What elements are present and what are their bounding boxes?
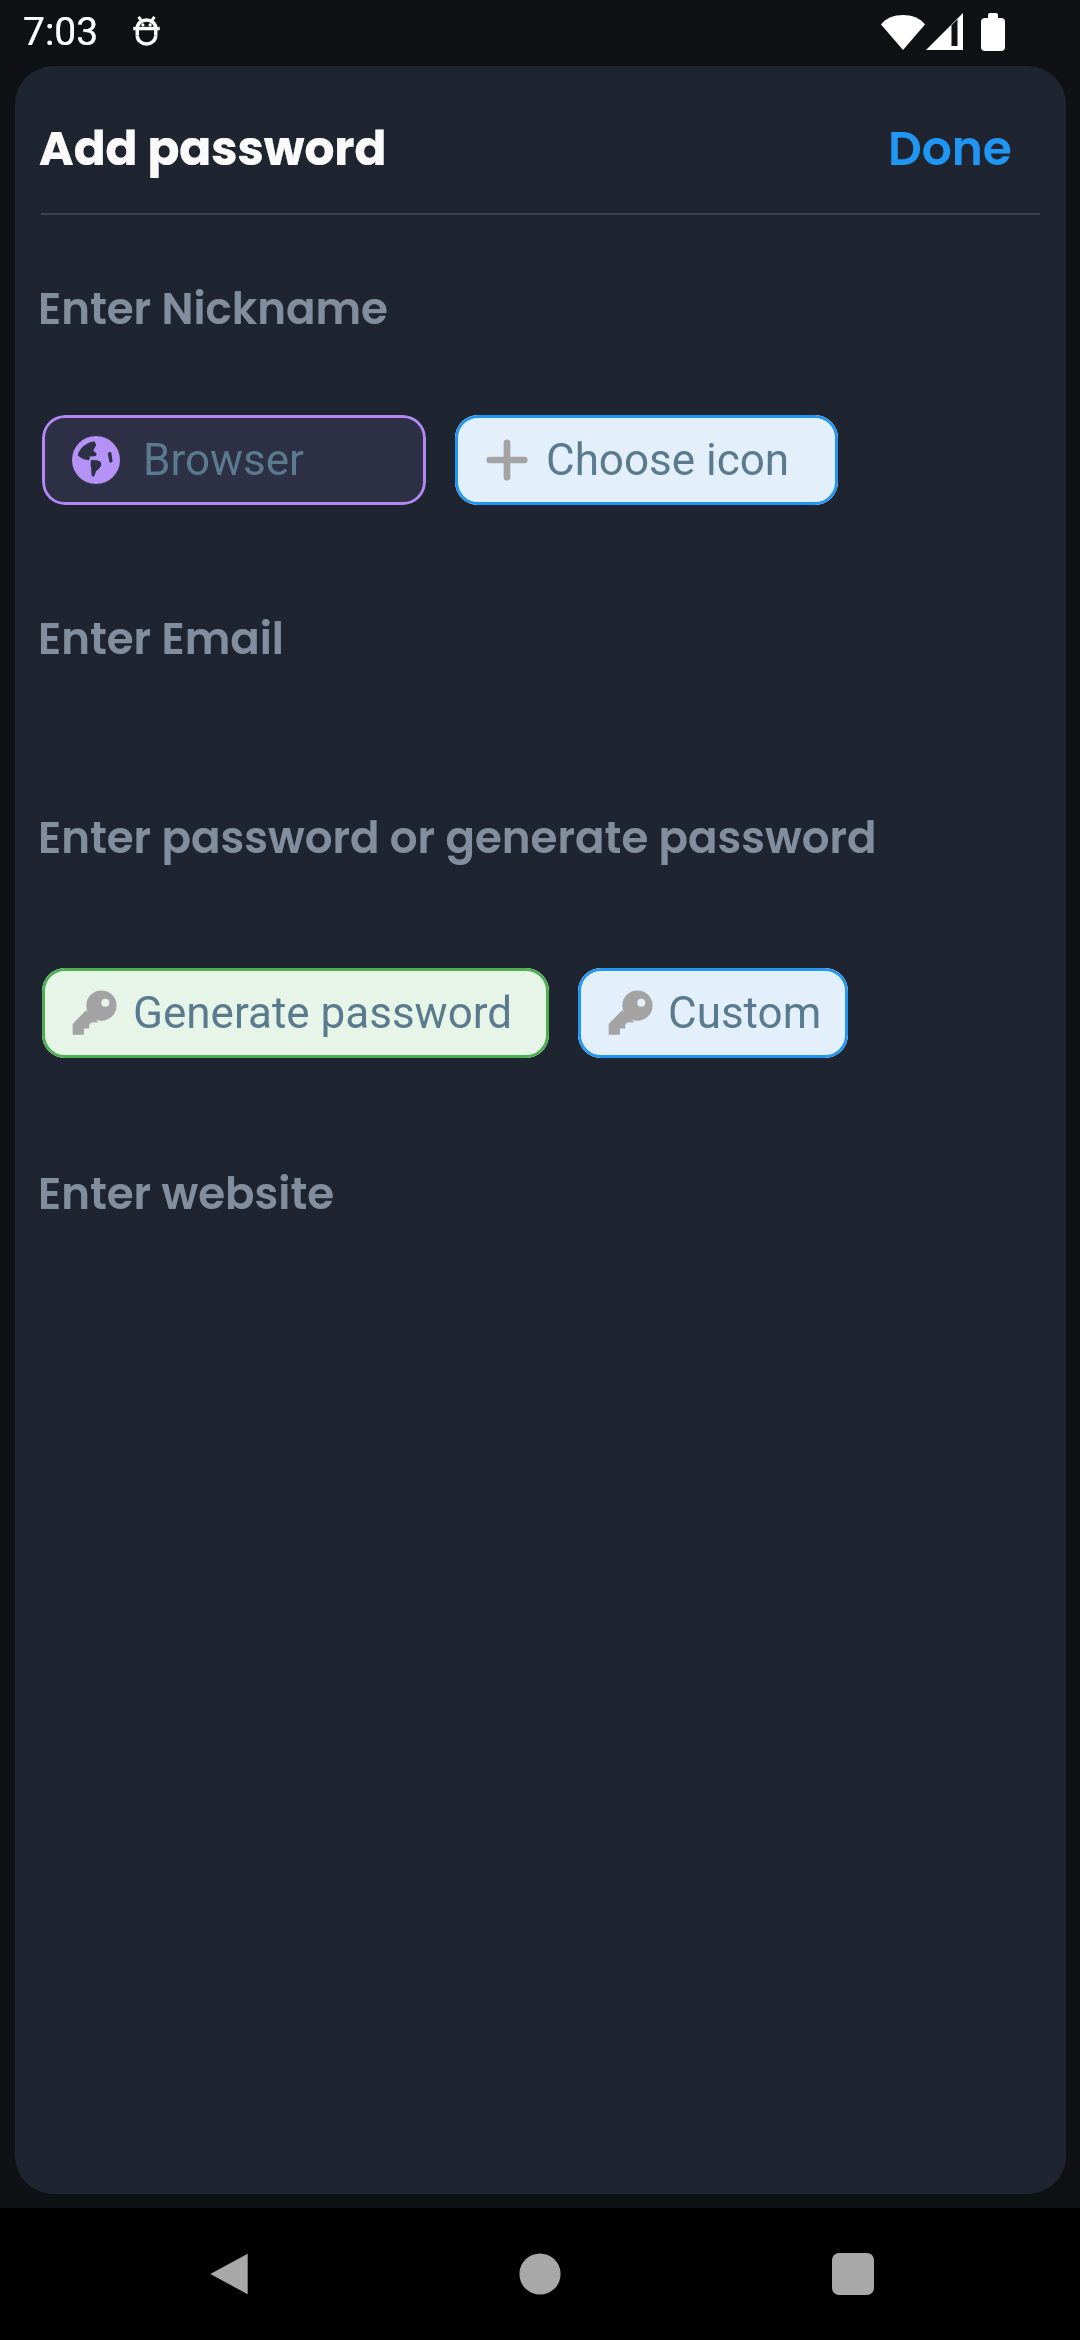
button[interactable]: Recent apps <box>805 2226 901 2322</box>
staticText: Enter Email <box>38 608 284 669</box>
staticText: Choose icon <box>546 434 790 486</box>
button[interactable]: Back <box>179 2226 275 2322</box>
button[interactable]: Choose icon <box>455 415 838 505</box>
staticText: Generate password <box>133 987 513 1039</box>
button[interactable]: Generate password <box>42 968 549 1058</box>
button[interactable]: Enter Nickname <box>15 278 1066 415</box>
button[interactable]: Browser <box>42 415 426 505</box>
staticText: 7:03 <box>23 9 99 55</box>
staticText: Enter Nickname <box>38 278 388 339</box>
button[interactable]: Enter Email <box>15 608 1066 807</box>
button[interactable]: Enter password or generate password <box>15 807 1066 968</box>
staticText: Enter password or generate password <box>38 807 877 868</box>
staticText: Add password <box>39 116 387 182</box>
button[interactable]: Custom <box>578 968 848 1058</box>
staticText: Custom <box>668 987 822 1039</box>
staticText: Enter website <box>38 1163 335 1224</box>
button[interactable]: Done <box>866 102 1034 196</box>
button[interactable]: Home <box>492 2226 588 2322</box>
staticText: Browser <box>143 434 305 486</box>
button[interactable]: Enter website <box>15 1163 1066 1323</box>
staticText: Done <box>888 116 1012 182</box>
